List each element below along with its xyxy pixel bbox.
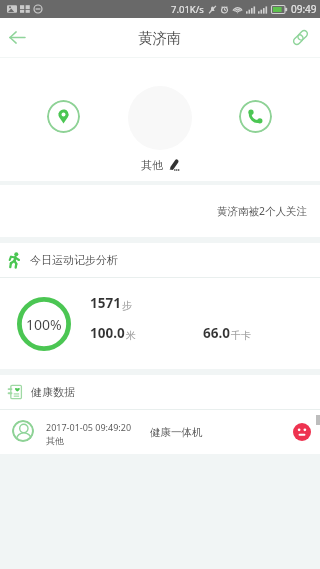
button[interactable]: 2017-01-05 09:49:20: [0, 410, 320, 454]
button[interactable]: Call: [239, 100, 272, 133]
button[interactable]: Share link: [280, 18, 320, 57]
staticText: 7.01K/s: [171, 3, 204, 16]
staticText: 步: [122, 299, 132, 312]
staticText: 100.0: [90, 324, 125, 342]
staticText: 66.0: [203, 324, 230, 342]
staticText: 黄济南被2个人关注: [217, 204, 308, 218]
button[interactable]: 其他: [137, 157, 184, 173]
staticText: 其他: [46, 435, 64, 446]
staticText: 100%: [26, 315, 62, 334]
button[interactable]: Back: [0, 18, 35, 57]
staticText: 09:49: [291, 2, 317, 16]
staticText: 米: [126, 329, 136, 342]
staticText: 2017-01-05 09:49:20: [46, 421, 132, 433]
staticText: 健康数据: [31, 385, 75, 399]
staticText: 健康一体机: [150, 426, 203, 439]
staticText: 黄济南: [138, 29, 182, 47]
staticText: 其他: [141, 158, 163, 172]
staticText: 今日运动记步分析: [30, 253, 118, 267]
staticText: 1571: [90, 294, 121, 312]
staticText: 千卡: [231, 329, 251, 342]
button[interactable]: Location: [47, 100, 80, 133]
